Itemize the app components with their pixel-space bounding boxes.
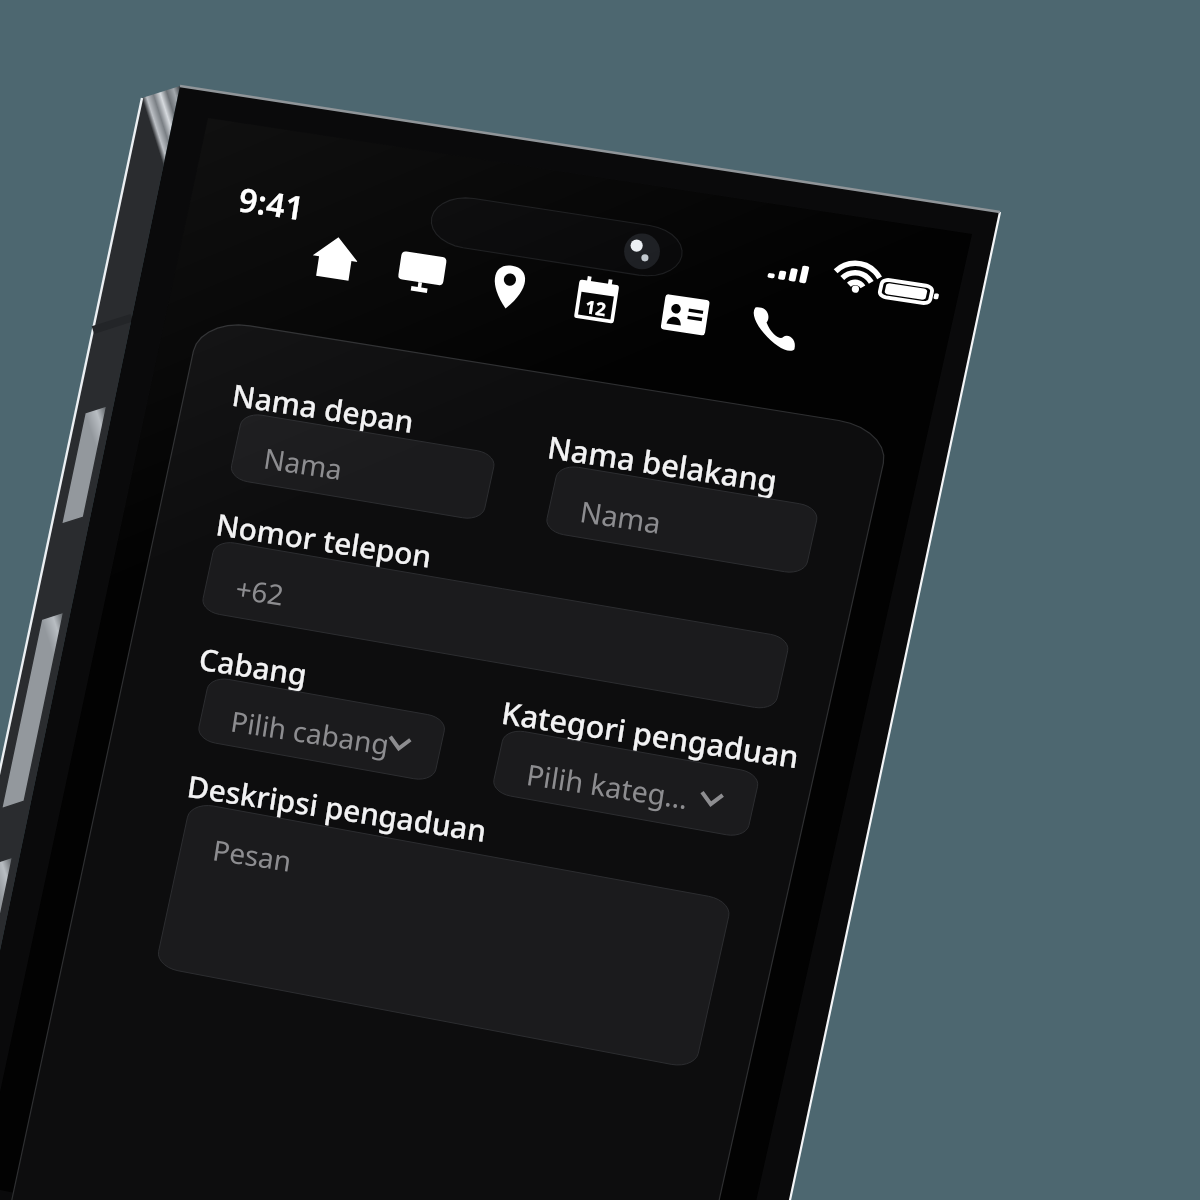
- button[interactable]: Form pengaduan phone mockup: [0, 0, 1200, 1200]
